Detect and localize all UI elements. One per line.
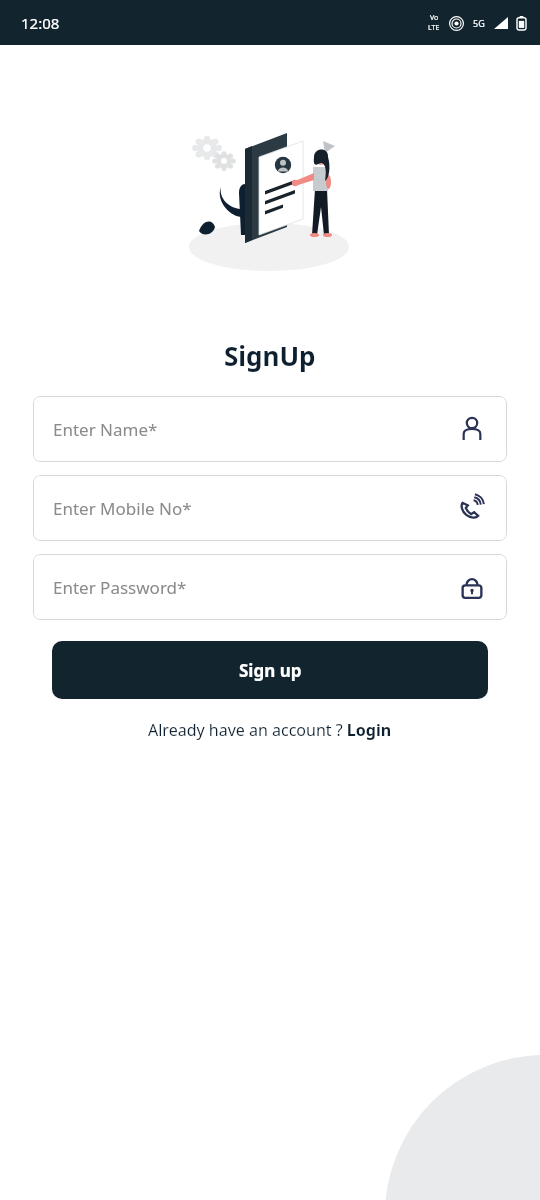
staticText: SignUp xyxy=(224,338,316,373)
staticText: Sign up xyxy=(239,659,302,682)
staticText: 5G xyxy=(473,17,485,29)
staticText: Already have an account ? Login xyxy=(148,719,392,741)
button[interactable]: Enter Mobile No* xyxy=(33,475,507,541)
button[interactable]: Already have an account ? Login xyxy=(140,715,400,745)
staticText: Enter Password* xyxy=(53,576,187,599)
staticText: Enter Mobile No* xyxy=(53,497,192,520)
staticText: Enter Name* xyxy=(53,418,158,441)
button[interactable]: Enter Password* xyxy=(33,554,507,620)
staticText: 12:08 xyxy=(21,13,60,33)
button[interactable]: Sign up xyxy=(52,641,488,699)
staticText: Vo xyxy=(430,13,439,23)
staticText: LTE xyxy=(428,23,440,33)
button[interactable]: Enter Name* xyxy=(33,396,507,462)
